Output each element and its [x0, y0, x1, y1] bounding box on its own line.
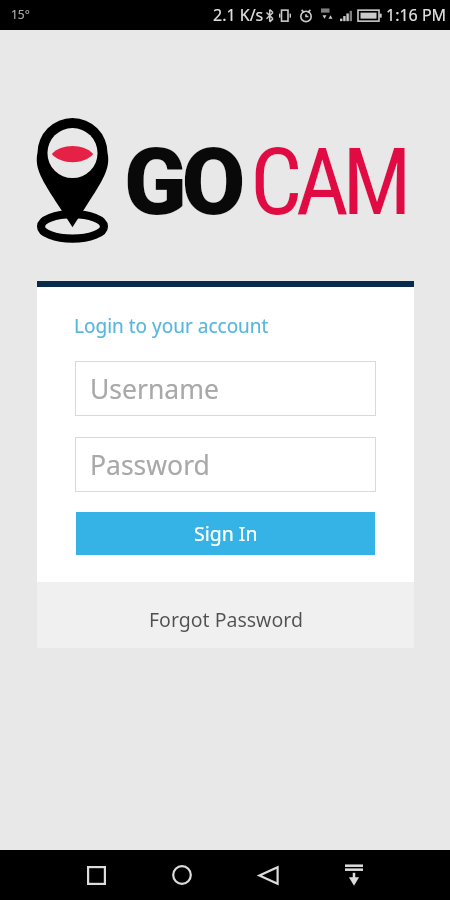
- button[interactable]: Sign In: [76, 512, 375, 555]
- staticText: Login to your account: [74, 313, 269, 339]
- staticText: Password: [90, 447, 210, 483]
- staticText: Sign In: [194, 520, 258, 547]
- staticText: 2.1 K/s: [213, 4, 264, 26]
- staticText: 1:16 PM: [386, 4, 447, 26]
- button[interactable]: Password: [75, 437, 376, 492]
- staticText: Username: [90, 371, 219, 407]
- button[interactable]: Hide keyboard: [311, 850, 397, 900]
- button[interactable]: Forgot Password: [37, 582, 414, 648]
- staticText: CAM: [250, 129, 406, 237]
- staticText: Forgot Password: [149, 606, 303, 633]
- button[interactable]: Username: [75, 361, 376, 416]
- button[interactable]: Recents: [53, 850, 139, 900]
- staticText: 15°: [11, 6, 30, 22]
- button[interactable]: Home: [139, 850, 225, 900]
- button[interactable]: Back: [225, 850, 311, 900]
- staticText: GO: [124, 129, 241, 237]
